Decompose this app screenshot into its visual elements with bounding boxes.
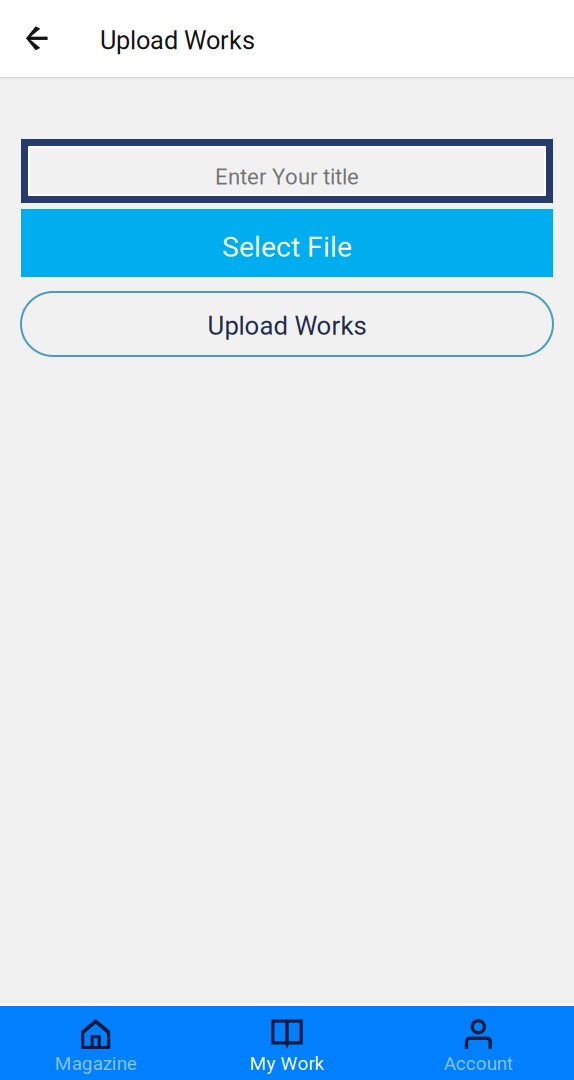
staticText: Account bbox=[444, 1052, 513, 1075]
staticText: Magazine bbox=[55, 1052, 137, 1075]
staticText: Select File bbox=[222, 230, 352, 264]
button[interactable]: Account bbox=[383, 1006, 574, 1080]
button[interactable]: Upload Works bbox=[21, 292, 553, 356]
button[interactable]: Enter Your title bbox=[21, 139, 553, 203]
button[interactable]: My Work bbox=[191, 1006, 383, 1080]
staticText: Upload Works bbox=[207, 311, 366, 341]
button[interactable]: Magazine bbox=[0, 1006, 191, 1080]
staticText: My Work bbox=[249, 1052, 324, 1075]
button[interactable]: Select File bbox=[21, 209, 553, 277]
staticText: Upload Works bbox=[100, 26, 255, 55]
button[interactable]: Back bbox=[11, 12, 63, 64]
staticText: Enter Your title bbox=[215, 164, 359, 190]
